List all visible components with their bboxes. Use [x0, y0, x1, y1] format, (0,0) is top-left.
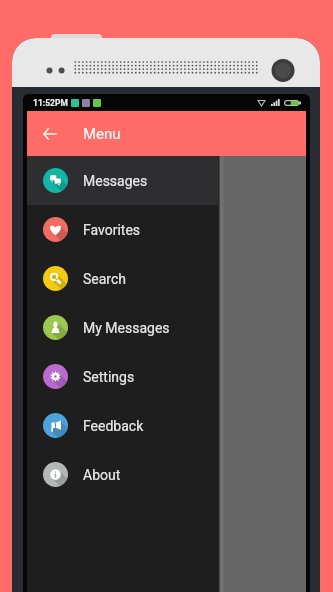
- staticText: About: [83, 467, 121, 483]
- button[interactable]: Back: [31, 116, 67, 152]
- button[interactable]: Search: [27, 254, 218, 303]
- staticText: Favorites: [83, 222, 141, 238]
- staticText: Messages: [83, 173, 148, 189]
- button[interactable]: Settings: [27, 352, 218, 401]
- button[interactable]: Messages: [27, 156, 218, 205]
- staticText: Menu: [83, 125, 121, 143]
- staticText: Search: [83, 271, 127, 287]
- button[interactable]: About: [27, 450, 218, 499]
- staticText: 11:52PM: [33, 98, 68, 108]
- button[interactable]: Favorites: [27, 205, 218, 254]
- button[interactable]: My Messages: [27, 303, 218, 352]
- button[interactable]: Feedback: [27, 401, 218, 450]
- staticText: My Messages: [83, 320, 170, 336]
- staticText: Settings: [83, 369, 135, 385]
- staticText: Feedback: [83, 418, 144, 434]
